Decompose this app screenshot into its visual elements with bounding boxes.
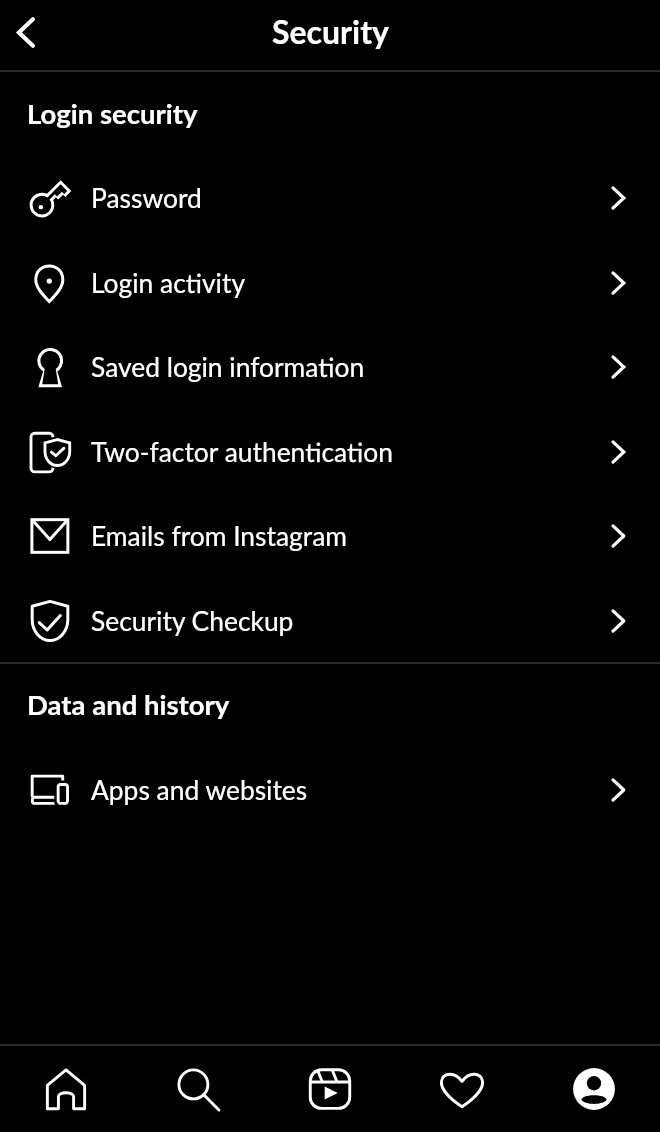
button[interactable]: Two-factor authentication	[0, 409, 660, 494]
button[interactable]: Reels	[264, 1045, 396, 1132]
staticText: Apps and websites	[91, 774, 308, 806]
button[interactable]: Search	[132, 1045, 264, 1132]
button[interactable]: Saved login information	[0, 324, 660, 409]
staticText: Emails from Instagram	[91, 520, 348, 552]
button[interactable]: Login activity	[0, 240, 660, 325]
staticText: Data and history	[27, 688, 230, 721]
staticText: Security	[272, 12, 389, 50]
staticText: Saved login information	[91, 351, 365, 383]
staticText: Security Checkup	[91, 605, 294, 637]
button[interactable]: Home	[0, 1045, 132, 1132]
button[interactable]: Activity	[396, 1045, 528, 1132]
staticText: Two-factor authentication	[91, 436, 393, 468]
button[interactable]: Emails from Instagram	[0, 493, 660, 578]
button[interactable]: Security Checkup	[0, 578, 660, 663]
staticText: Login security	[27, 97, 198, 130]
staticText: Login activity	[91, 267, 246, 299]
button[interactable]: Apps and websites	[0, 747, 660, 832]
staticText: Password	[91, 182, 202, 214]
button[interactable]: Back	[0, 0, 52, 70]
button[interactable]: Password	[0, 155, 660, 240]
button[interactable]: Profile	[528, 1045, 660, 1132]
